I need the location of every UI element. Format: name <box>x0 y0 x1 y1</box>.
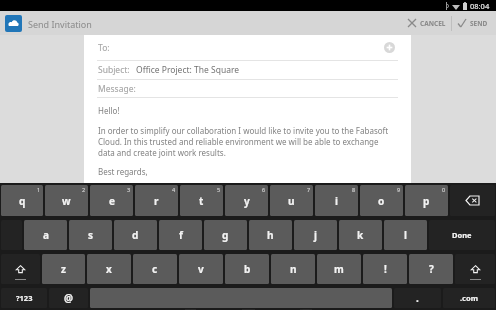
staticText: d <box>132 228 139 242</box>
staticText: ? <box>429 262 434 276</box>
button[interactable]: ! <box>363 254 407 284</box>
staticText: To: <box>98 42 110 54</box>
button[interactable]: l <box>384 220 427 250</box>
button[interactable]: u <box>270 185 313 216</box>
staticText: @ <box>64 291 73 305</box>
staticText: 2 <box>82 186 86 193</box>
staticText: Message: <box>98 83 136 95</box>
staticText: . <box>416 291 419 305</box>
button[interactable]: r <box>135 185 178 216</box>
staticText: s <box>88 228 94 242</box>
staticText: .com <box>460 293 478 303</box>
staticText: 08:04 <box>470 1 490 11</box>
staticText: g <box>222 228 229 242</box>
button[interactable]: z <box>42 254 85 284</box>
button[interactable]: e <box>90 185 133 216</box>
staticText: 7 <box>307 186 311 193</box>
button[interactable]: Shift <box>455 254 495 284</box>
button[interactable]: w <box>45 185 88 216</box>
button[interactable]: CANCEL <box>407 11 446 35</box>
staticText: e <box>109 194 115 208</box>
button[interactable]: t <box>180 185 223 216</box>
staticText: ! <box>384 262 387 276</box>
staticText: i <box>335 194 338 208</box>
button[interactable]: i <box>315 185 358 216</box>
staticText: p <box>423 194 430 208</box>
staticText: In order to simplify our collaboration I… <box>98 125 397 158</box>
staticText: v <box>198 262 204 276</box>
button[interactable]: v <box>179 254 223 284</box>
button[interactable]: @ <box>49 288 88 308</box>
staticText: 9 <box>397 186 401 193</box>
staticText: c <box>152 262 158 276</box>
staticText: f <box>179 228 183 242</box>
button[interactable]: Shift <box>1 254 40 284</box>
staticText: z <box>61 262 66 276</box>
button[interactable]: x <box>87 254 131 284</box>
button[interactable]: . <box>394 288 441 308</box>
staticText: Send Invitation <box>28 18 92 30</box>
button[interactable]: p <box>405 185 448 216</box>
button[interactable]: y <box>225 185 268 216</box>
staticText: Done <box>452 230 472 240</box>
staticText: 1 <box>37 186 41 193</box>
staticText: Office Project: The Square <box>136 64 240 76</box>
staticText: h <box>267 228 274 242</box>
button[interactable]: d <box>114 220 157 250</box>
button[interactable]: c <box>133 254 177 284</box>
staticText: x <box>106 262 112 276</box>
staticText: 5 <box>217 186 221 193</box>
button[interactable]: Backspace <box>450 185 495 216</box>
staticText: l <box>404 228 407 242</box>
button[interactable]: g <box>204 220 247 250</box>
staticText: t <box>199 194 204 208</box>
staticText: u <box>288 194 295 208</box>
button[interactable]: Add recipient <box>384 42 395 53</box>
staticText: Best regards, <box>98 166 148 177</box>
staticText: 3 <box>127 186 131 193</box>
button[interactable]: h <box>249 220 292 250</box>
button[interactable]: Subject: <box>84 61 411 79</box>
staticText: 0 <box>442 186 446 193</box>
button[interactable]: k <box>339 220 382 250</box>
staticText: 8 <box>352 186 356 193</box>
staticText: b <box>244 262 251 276</box>
button[interactable]: s <box>69 220 112 250</box>
staticText: a <box>43 228 49 242</box>
button[interactable]: ?123 <box>1 288 47 308</box>
button[interactable]: m <box>317 254 361 284</box>
staticText: j <box>314 228 317 242</box>
button[interactable]: ? <box>409 254 453 284</box>
staticText: m <box>334 262 344 276</box>
button[interactable]: q <box>1 185 43 216</box>
staticText: n <box>290 262 297 276</box>
button[interactable]: j <box>294 220 337 250</box>
staticText: Hello! <box>98 105 120 116</box>
staticText: o <box>378 194 385 208</box>
staticText: CANCEL <box>420 19 446 28</box>
staticText: y <box>244 194 250 208</box>
button[interactable]: f <box>159 220 202 250</box>
button[interactable]: a <box>24 220 67 250</box>
staticText: SEND <box>470 19 488 28</box>
button[interactable]: n <box>271 254 315 284</box>
staticText: 6 <box>262 186 266 193</box>
staticText: w <box>62 194 71 208</box>
button[interactable]: Done <box>429 220 495 250</box>
button[interactable]: b <box>225 254 269 284</box>
staticText: q <box>19 194 26 208</box>
staticText: k <box>357 228 364 242</box>
button[interactable]: SEND <box>457 11 488 35</box>
staticText: ?123 <box>16 293 33 303</box>
staticText: r <box>154 194 159 208</box>
staticText: Subject: <box>98 64 130 76</box>
button[interactable]: o <box>360 185 403 216</box>
button[interactable]: .com <box>443 288 495 308</box>
button[interactable]: Send Invitation <box>5 15 92 32</box>
staticText: 4 <box>172 186 176 193</box>
